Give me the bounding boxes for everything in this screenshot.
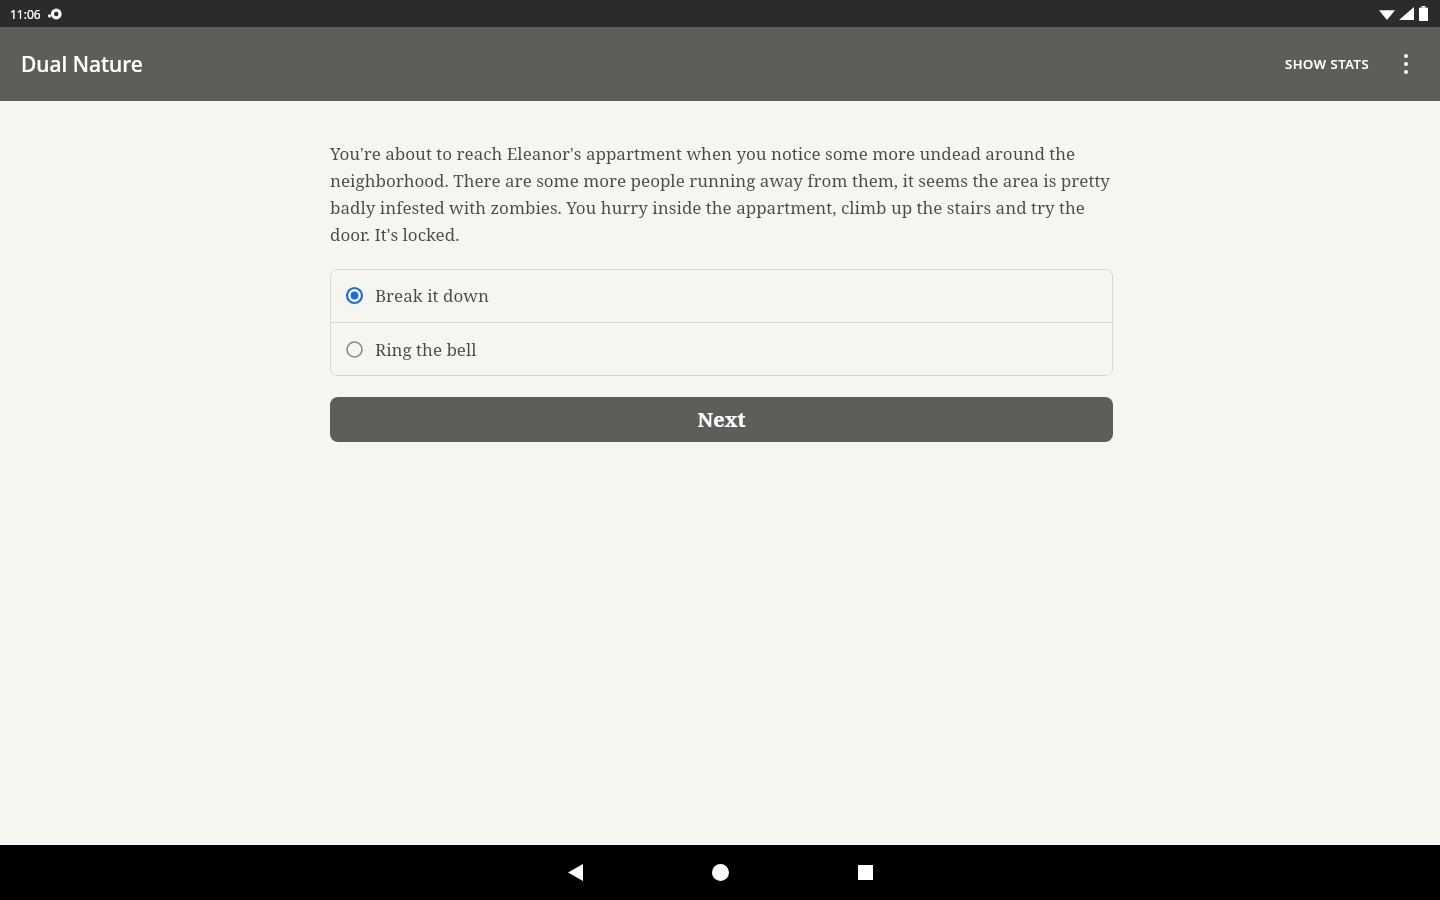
staticText: Dual Nature (21, 50, 143, 79)
staticText: Break it down (375, 284, 489, 307)
button[interactable]: SHOW STATS (1273, 41, 1382, 87)
staticText: 11:06 (10, 6, 41, 22)
button[interactable]: Break it down (330, 269, 1113, 322)
staticText: You're about to reach Eleanor's appartme… (330, 142, 1113, 246)
button[interactable]: Back (539, 845, 611, 900)
button[interactable]: More options (1382, 40, 1430, 88)
staticText: Next (697, 406, 746, 433)
button[interactable]: Recent apps (829, 845, 901, 900)
button[interactable]: Ring the bell (330, 323, 1113, 376)
staticText: Ring the bell (375, 338, 477, 361)
staticText: SHOW STATS (1285, 55, 1370, 73)
button[interactable]: Next (330, 397, 1113, 442)
button[interactable]: Home (684, 845, 756, 900)
